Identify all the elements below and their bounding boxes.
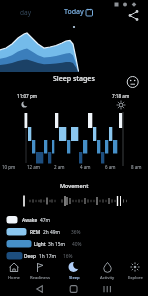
button[interactable] bbox=[0, 261, 28, 282]
staticText: day bbox=[20, 8, 31, 17]
staticText: 11:07 pm bbox=[17, 93, 38, 99]
staticText: 3h 15m bbox=[48, 241, 65, 248]
button[interactable]: Today bbox=[52, 4, 96, 20]
staticText: 16% bbox=[63, 253, 73, 260]
staticText: 6 am bbox=[105, 164, 116, 170]
staticText: Home bbox=[8, 275, 20, 281]
staticText: Sleep stages bbox=[53, 74, 95, 84]
button[interactable] bbox=[121, 261, 148, 282]
staticText: 10 pm bbox=[2, 164, 16, 170]
staticText: Awake bbox=[22, 217, 38, 224]
staticText: Light bbox=[34, 241, 46, 248]
button[interactable] bbox=[98, 283, 118, 296]
staticText: 4 am bbox=[80, 164, 91, 170]
button[interactable] bbox=[26, 261, 54, 282]
staticText: Movement bbox=[60, 182, 89, 189]
staticText: Readiness bbox=[30, 275, 50, 281]
staticText: 1h 17m bbox=[39, 253, 56, 260]
staticText: 7:18 am bbox=[112, 93, 130, 99]
button[interactable] bbox=[124, 6, 144, 22]
button[interactable] bbox=[64, 283, 84, 296]
staticText: Activity bbox=[100, 275, 115, 281]
staticText: 36% bbox=[71, 229, 81, 236]
button[interactable] bbox=[60, 261, 88, 282]
button[interactable] bbox=[30, 283, 50, 296]
staticText: Today bbox=[64, 7, 84, 17]
staticText: 8 am bbox=[131, 164, 142, 170]
staticText: 47m bbox=[40, 217, 50, 224]
staticText: 2h 49m bbox=[43, 229, 60, 236]
staticText: Deep bbox=[24, 253, 36, 260]
staticText: 2 am bbox=[54, 164, 65, 170]
button[interactable] bbox=[124, 74, 144, 90]
staticText: Explore bbox=[128, 275, 143, 281]
staticText: Sleep bbox=[69, 275, 80, 281]
staticText: 40% bbox=[72, 241, 82, 248]
staticText: REM bbox=[30, 229, 41, 236]
staticText: 12 am bbox=[27, 164, 41, 170]
button[interactable] bbox=[93, 261, 121, 282]
